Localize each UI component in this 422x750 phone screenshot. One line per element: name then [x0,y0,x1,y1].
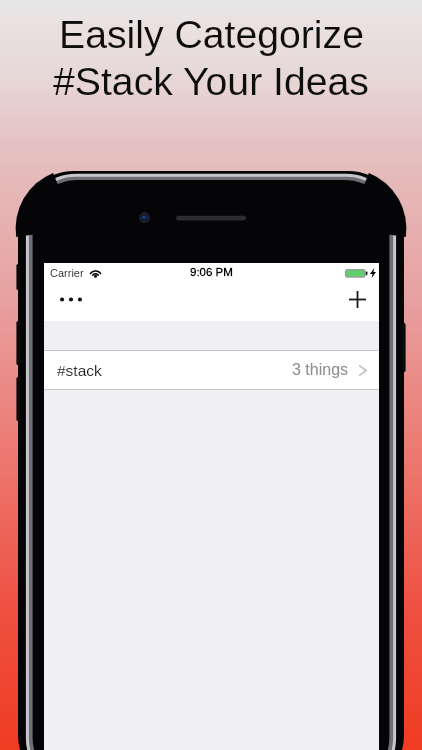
button[interactable]: More options [54,282,88,316]
staticText: 3 things [292,361,349,379]
button[interactable]: Add [340,282,374,316]
button[interactable]: #stack [44,351,379,389]
staticText: #stack [57,362,102,379]
staticText: #Stack Your Ideas [53,60,369,104]
staticText: 9:06 PM [190,266,233,279]
staticText: Easily Categorize [59,13,364,57]
staticText: Carrier [50,267,84,279]
